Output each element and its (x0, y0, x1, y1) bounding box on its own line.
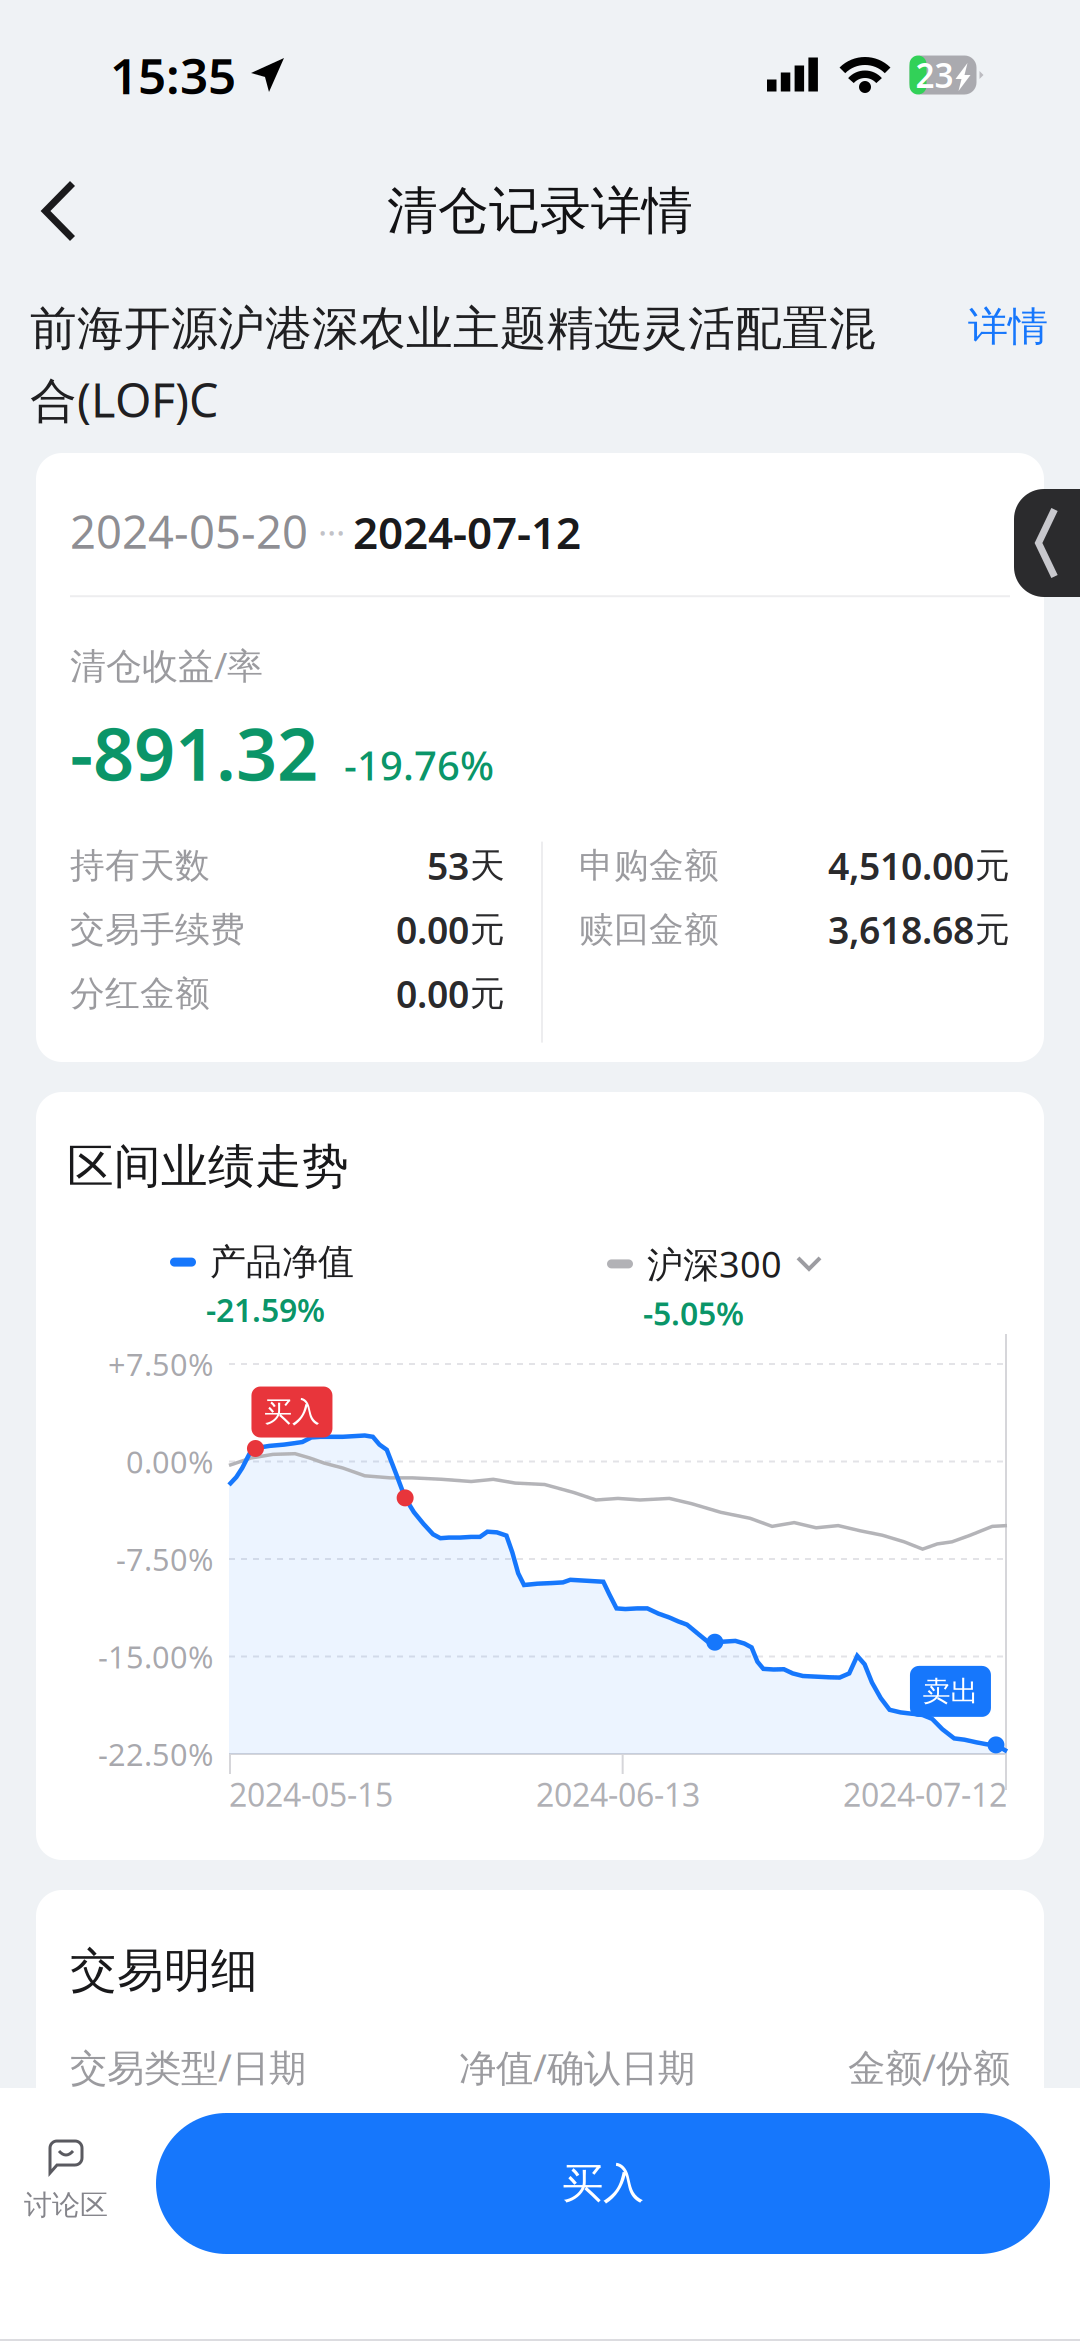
staticText: +7.50% (108, 1344, 213, 1384)
staticText: 元 (470, 908, 505, 951)
staticText: 讨论区 (24, 2188, 108, 2222)
staticText: 2024-05-20 (70, 501, 308, 561)
staticText: -22.50% (98, 1734, 213, 1774)
staticText: 23 (915, 53, 953, 97)
staticText: 交易明细 (70, 1942, 258, 1999)
staticText: 净值/确认日期 (459, 2042, 695, 2092)
staticText: 沪深300 (647, 1240, 782, 1288)
staticText: 分红金额 (70, 972, 210, 1015)
button[interactable]: Expand side panel (1014, 489, 1080, 597)
staticText: 申购金额 (579, 844, 719, 887)
staticText: 3,618.68 (828, 905, 974, 954)
button[interactable]: Back (0, 156, 112, 266)
staticText: 4,510.00 (828, 841, 974, 890)
staticText: -19.76% (344, 738, 494, 792)
staticText: 15:35 (110, 42, 236, 108)
staticText: 清仓收益/率 (70, 641, 263, 689)
staticText: 产品净值 (210, 1240, 354, 1284)
button[interactable]: 讨论区 (10, 2138, 122, 2248)
staticText: 2024-07-12 (353, 503, 581, 561)
staticText: 卖出 (922, 1674, 978, 1709)
staticText: 交易类型/日期 (70, 2042, 306, 2092)
staticText: 53 (427, 841, 469, 890)
staticText: 买入 (264, 1395, 320, 1429)
staticText: -891.32 (70, 705, 318, 801)
staticText: 2024-06-13 (536, 1773, 700, 1815)
staticText: 持有天数 (70, 844, 210, 887)
staticText: ··· (318, 509, 345, 555)
staticText: 赎回金额 (579, 908, 719, 951)
staticText: 区间业绩走势 (67, 1138, 349, 1195)
button[interactable]: 买入 (156, 2113, 1050, 2254)
staticText: 2024-07-12 (843, 1773, 1007, 1815)
staticText: 元 (470, 972, 505, 1015)
staticText: 2024-05-15 (229, 1773, 393, 1815)
button[interactable]: 详情 (968, 272, 1048, 351)
staticText: 元 (975, 844, 1010, 887)
staticText: -21.59% (206, 1288, 325, 1331)
staticText: 天 (470, 844, 505, 887)
staticText: 前海开源沪港深农业主题精选灵活配置混合(LOF)C (30, 300, 876, 430)
staticText: -5.05% (643, 1292, 744, 1334)
staticText: 交易手续费 (70, 908, 245, 951)
staticText: -15.00% (98, 1636, 213, 1677)
staticText: 清仓记录详情 (387, 180, 693, 242)
staticText: 0.00 (396, 905, 469, 954)
staticText: 金额/份额 (848, 2042, 1010, 2092)
staticText: 元 (975, 908, 1010, 951)
staticText: -7.50% (116, 1539, 213, 1579)
staticText: 0.00 (396, 969, 469, 1018)
staticText: 0.00% (126, 1441, 213, 1482)
staticText: 详情 (968, 302, 1048, 351)
staticText: 买入 (562, 2158, 644, 2209)
